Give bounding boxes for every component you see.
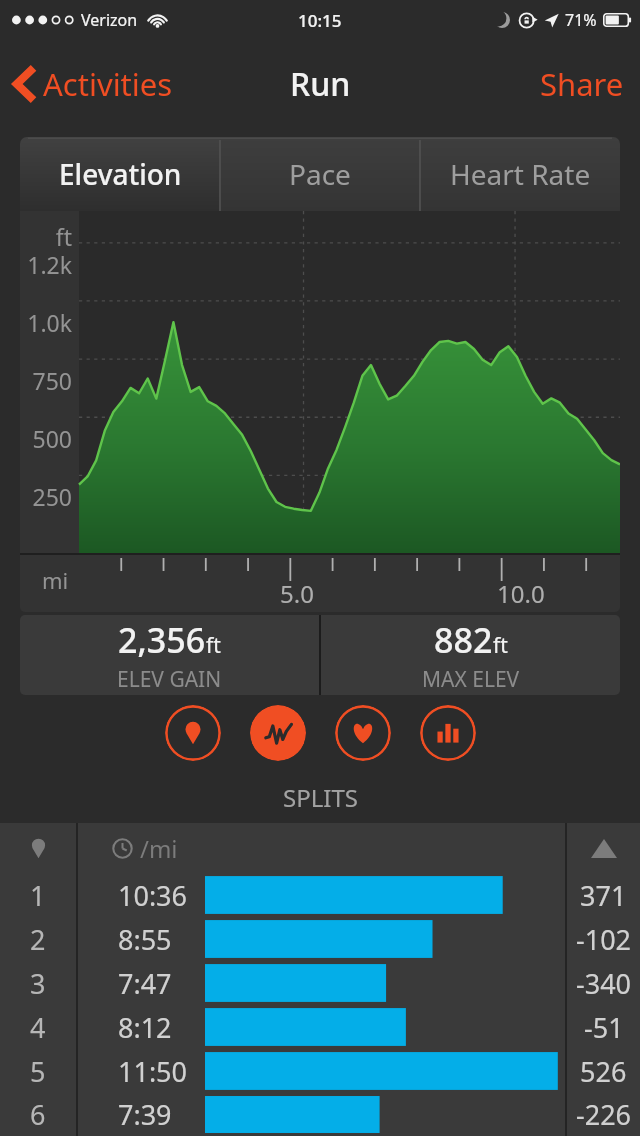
staticText: 2,356 [118, 617, 206, 663]
button[interactable]: Elevation chart [250, 705, 306, 761]
button[interactable]: 2,356 [20, 615, 319, 695]
button[interactable]: Map [165, 705, 221, 761]
staticText: mi [42, 565, 69, 595]
staticText: 371 [580, 877, 627, 914]
button[interactable]: 3 [0, 961, 640, 1005]
staticText: -51 [584, 1009, 624, 1046]
staticText: 1 [30, 877, 46, 914]
staticText: 750 [20, 365, 72, 396]
staticText: MAX ELEV [422, 665, 520, 694]
button[interactable]: 4 [0, 1005, 640, 1049]
staticText: 5.0 [280, 577, 314, 610]
staticText: Heart Rate [450, 155, 591, 193]
button[interactable]: Splits [420, 705, 476, 761]
staticText: ELEV GAIN [117, 665, 222, 694]
staticText: Share [540, 63, 624, 105]
staticText: 882 [434, 617, 493, 663]
staticText: ft [493, 631, 508, 660]
staticText: 11:50 [118, 1053, 188, 1090]
staticText: 5 [30, 1053, 46, 1090]
staticText: 1.0k [20, 307, 72, 338]
staticText: 10:15 [298, 9, 342, 32]
button[interactable]: Heart rate [335, 705, 391, 761]
button[interactable]: 5 [0, 1049, 640, 1093]
staticText: Verizon [81, 9, 138, 31]
staticText: 7:47 [118, 965, 172, 1002]
staticText: 7:39 [118, 1096, 172, 1133]
button[interactable]: Activities [0, 55, 183, 113]
staticText: 6 [30, 1096, 46, 1133]
staticText: 4 [30, 1009, 46, 1046]
staticText: 8:55 [118, 921, 172, 958]
staticText: 250 [20, 481, 72, 512]
staticText: Elevation [59, 155, 182, 193]
staticText: 10.0 [497, 577, 545, 610]
button[interactable]: 1 [0, 873, 640, 917]
staticText: 71% [565, 9, 597, 31]
staticText: ft [206, 631, 221, 660]
staticText: -226 [576, 1096, 632, 1133]
staticText: -102 [576, 921, 632, 958]
staticText: Run [290, 62, 351, 106]
staticText: 3 [30, 965, 46, 1002]
button[interactable]: Pace [220, 137, 420, 211]
button[interactable]: Share [524, 53, 640, 115]
staticText: 2 [30, 921, 46, 958]
staticText: -340 [576, 965, 632, 1002]
staticText: 8:12 [118, 1009, 172, 1046]
staticText: ft [20, 221, 72, 252]
button[interactable]: Heart Rate [420, 137, 620, 211]
staticText: /mi [140, 832, 178, 865]
staticText: 526 [580, 1053, 627, 1090]
staticText: 1.2k [20, 249, 72, 280]
staticText: Activities [43, 63, 173, 105]
staticText: Pace [289, 155, 351, 193]
staticText: 500 [20, 423, 72, 454]
staticText: 10:36 [118, 877, 188, 914]
button[interactable]: 6 [0, 1093, 640, 1136]
button[interactable]: 2 [0, 917, 640, 961]
staticText: SPLITS [283, 781, 358, 814]
button[interactable]: 882 [321, 615, 620, 695]
button[interactable]: Elevation [20, 137, 220, 211]
